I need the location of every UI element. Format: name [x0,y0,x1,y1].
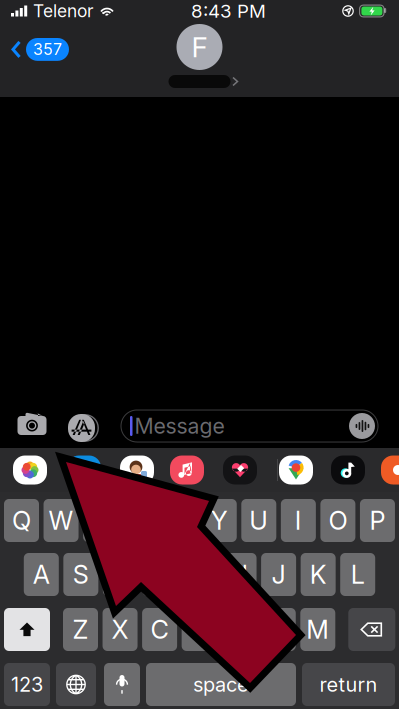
staticText: H [230,559,249,590]
staticText: L [351,559,365,590]
staticText: J [272,559,286,590]
button[interactable]: J [261,553,296,596]
staticText: Q [12,505,31,536]
staticText: Message [134,413,224,439]
button[interactable]: M [300,608,335,651]
button[interactable]: Contact details [158,24,240,88]
staticText: N [269,614,288,645]
staticText: 8:43 PM [191,0,266,22]
button[interactable]: F [142,553,177,596]
staticText: 357 [33,39,62,59]
staticText: I [295,505,302,536]
button[interactable]: Music [165,450,209,490]
staticText: C [151,614,169,645]
staticText: S [73,559,89,590]
button[interactable]: E [83,499,118,542]
staticText: K [310,559,327,590]
button[interactable]: O [320,499,355,542]
button[interactable]: Memoji [115,450,159,490]
staticText: M [306,614,329,645]
staticText: Y [211,505,228,536]
button[interactable]: Delete [348,608,395,651]
button[interactable]: U [241,499,276,542]
staticText: return [319,672,377,697]
staticText: V [191,614,208,645]
button[interactable]: I [281,499,316,542]
staticText: F [191,30,207,64]
button[interactable]: TikTok [326,450,370,490]
button[interactable]: P [360,499,395,542]
staticText: space [193,672,249,697]
button[interactable]: space [146,663,296,706]
button[interactable]: A [24,553,59,596]
staticText: X [111,614,128,645]
button[interactable]: L [340,553,375,596]
button[interactable]: H [222,553,257,596]
staticText: U [249,505,268,536]
button[interactable]: Y [202,499,237,542]
staticText: P [369,505,385,536]
button[interactable]: Dictate [104,663,140,706]
button[interactable]: N [261,608,296,651]
staticText: O [328,505,347,536]
button[interactable]: W [43,499,78,542]
button[interactable]: 123 [4,663,50,706]
button[interactable]: Message field [0,401,378,448]
button[interactable]: Z [63,608,98,651]
button[interactable]: Camera [0,401,53,448]
button[interactable]: Switch keyboard [56,663,96,706]
staticText: A [33,559,50,590]
button[interactable]: Maps [274,450,318,490]
staticText: Z [72,614,88,645]
button[interactable]: S [63,553,98,596]
button[interactable]: C [142,608,177,651]
button[interactable]: Back to 357 conversations [0,32,77,67]
button[interactable]: Photos [8,450,52,490]
button[interactable]: return [302,663,395,706]
button[interactable]: X [102,608,137,651]
staticText: Telenor [33,0,94,21]
button[interactable]: App Store [0,401,105,448]
button[interactable]: K [301,553,336,596]
button[interactable]: Q [4,499,39,542]
button[interactable]: Shift [4,608,50,651]
staticText: W [48,505,73,536]
button[interactable]: App [62,450,106,490]
button[interactable]: D [103,553,138,596]
button[interactable]: V [182,608,217,651]
button[interactable]: Fitness [218,450,262,490]
staticText: 123 [11,672,43,697]
button[interactable]: App [376,450,399,490]
